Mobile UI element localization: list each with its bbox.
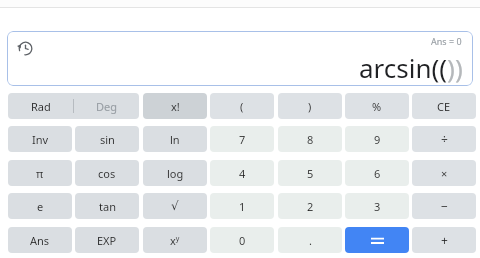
staticText: 4 [239,166,246,181]
staticText: Rad [31,99,51,114]
button[interactable]: log [143,160,207,186]
staticText: 0 [239,233,246,248]
staticText: ÷ [441,131,448,147]
button[interactable]: Multiply [412,160,476,186]
button[interactable]: Plus [412,227,476,253]
staticText: × [441,166,448,181]
button[interactable]: π [8,160,72,186]
button[interactable]: 8 [278,126,342,152]
staticText: . [309,233,312,248]
staticText: Deg [96,99,117,114]
button[interactable]: 5 [278,160,342,186]
staticText: cos [98,166,116,181]
staticText: sin [100,132,115,147]
button[interactable]: Decimal point [278,227,342,253]
staticText: 5 [307,166,314,181]
staticText: EXP [97,233,117,248]
button[interactable]: ) [278,93,342,119]
staticText: 2 [307,199,314,214]
staticText: Ans [30,233,50,248]
staticText: ln [170,132,180,147]
staticText: 1 [239,199,246,214]
staticText: tan [99,199,116,214]
staticText: Ans = 0 [431,35,462,47]
button[interactable]: Equals [345,227,409,253]
staticText: ) [308,99,312,114]
staticText: CE [437,99,451,114]
button[interactable]: Power [143,227,207,253]
button[interactable]: 0 [210,227,274,253]
staticText: √ [171,199,179,213]
staticText: x! [171,99,180,114]
staticText: ( [240,99,244,114]
button[interactable]: 3 [345,193,409,219]
button[interactable]: 7 [210,126,274,152]
staticText: arcsin(()) [359,50,463,85]
staticText: 8 [307,132,314,147]
button[interactable]: ln [143,126,207,152]
button[interactable]: Minus [412,193,476,219]
staticText: % [372,99,382,114]
staticText: 3 [374,199,381,214]
staticText: xy [170,233,180,248]
button[interactable]: History [15,38,35,58]
button[interactable]: tan [75,193,139,219]
button[interactable]: Deg [74,93,139,119]
button[interactable]: e [8,193,72,219]
button[interactable]: Inv [8,126,72,152]
button[interactable]: 1 [210,193,274,219]
staticText: log [167,166,184,181]
staticText: π [36,166,44,181]
button[interactable]: % [345,93,409,119]
button[interactable]: Divide [412,126,476,152]
button[interactable]: cos [75,160,139,186]
staticText: 6 [374,166,381,181]
button[interactable]: EXP [75,227,139,253]
button[interactable]: Rad [8,93,73,119]
button[interactable]: Ans [8,227,72,253]
staticText: 9 [374,132,381,147]
staticText: Inv [32,132,49,147]
button[interactable]: Square root [143,193,207,219]
button[interactable]: sin [75,126,139,152]
button[interactable]: 6 [345,160,409,186]
staticText: e [37,199,44,214]
staticText: + [441,232,448,248]
staticText: − [441,198,448,214]
button[interactable]: 4 [210,160,274,186]
button[interactable]: ( [210,93,274,119]
button[interactable]: 2 [278,193,342,219]
staticText: 7 [239,132,246,147]
button[interactable]: 9 [345,126,409,152]
button[interactable]: Factorial [143,93,207,119]
button[interactable]: CE [412,93,476,119]
